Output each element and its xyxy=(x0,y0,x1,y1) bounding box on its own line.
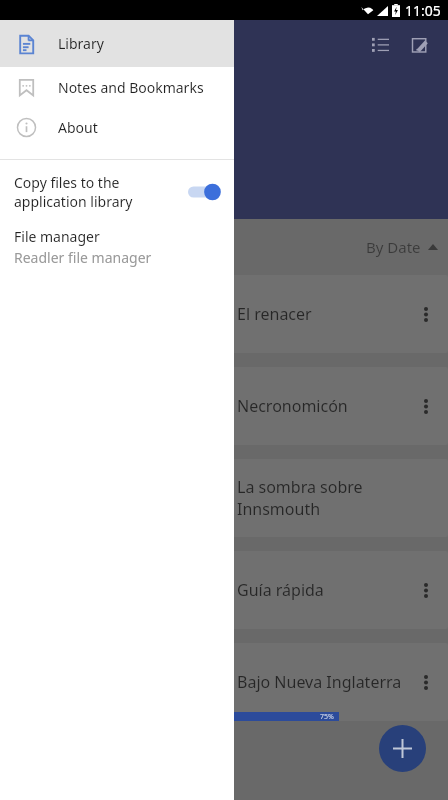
button[interactable]: El renacer xyxy=(11,275,448,353)
button[interactable]: More options xyxy=(404,384,448,428)
button[interactable]: Copy files to the application library xyxy=(0,160,234,221)
button[interactable]: Necronomicón xyxy=(11,367,448,445)
staticText: Notes and Bookmarks xyxy=(58,78,204,97)
staticText: Library xyxy=(16,31,80,57)
staticText: Copy files to the application library xyxy=(14,173,176,211)
button[interactable]: Bajo Nueva Inglaterra xyxy=(11,643,448,721)
button[interactable]: List view xyxy=(360,24,400,64)
staticText: Library xyxy=(58,34,104,53)
button[interactable]: More options xyxy=(404,660,448,704)
button[interactable]: By Date xyxy=(356,229,448,265)
button[interactable]: Library xyxy=(0,20,234,67)
staticText: 75% xyxy=(320,712,334,721)
button[interactable]: La sombra sobre Innsmouth xyxy=(11,459,448,537)
staticText: By Date xyxy=(366,237,421,257)
staticText: El renacer xyxy=(237,303,312,325)
button[interactable] xyxy=(16,131,68,219)
button[interactable]: File manager xyxy=(0,221,234,277)
button[interactable]: More options xyxy=(404,292,448,336)
staticText: Bajo Nueva Inglaterra xyxy=(237,671,402,693)
staticText: File manager xyxy=(14,227,100,246)
staticText: Continue read: xyxy=(16,81,100,97)
button[interactable]: Guía rápida xyxy=(11,551,448,629)
staticText: 11:05 xyxy=(405,1,441,20)
staticText: La llamada de Cthulhu xyxy=(16,99,195,122)
button[interactable]: Edit xyxy=(400,24,440,64)
button[interactable]: More options xyxy=(404,568,448,612)
staticText: Guía rápida xyxy=(237,579,324,601)
button[interactable]: Notes and Bookmarks xyxy=(0,67,234,107)
staticText: Necronomicón xyxy=(237,395,348,417)
staticText: About xyxy=(58,118,98,137)
staticText: Readler file manager xyxy=(14,248,152,267)
button[interactable]: About xyxy=(0,107,234,147)
staticText: La sombra sobre Innsmouth xyxy=(237,476,448,520)
button[interactable]: Add book xyxy=(379,725,426,772)
